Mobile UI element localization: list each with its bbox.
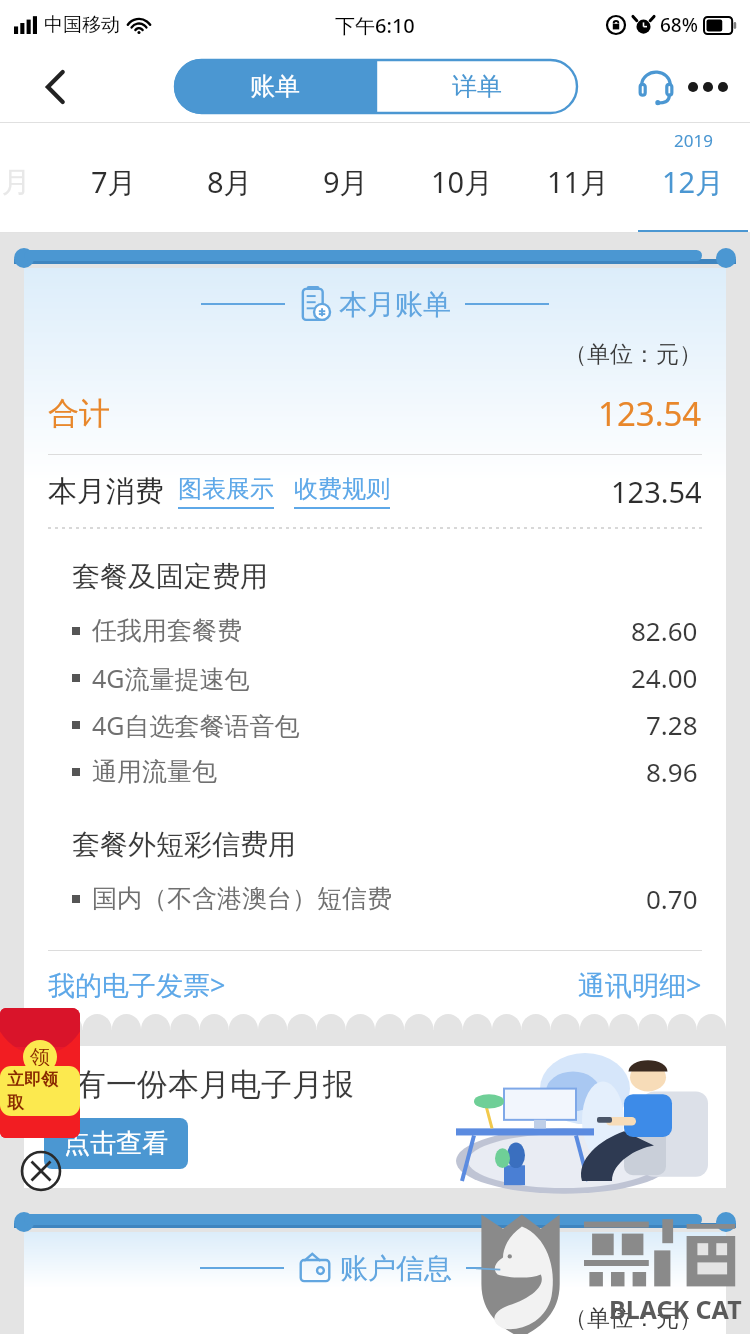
button[interactable]: 点击查看 <box>44 1118 188 1169</box>
staticText: 任我用套餐费 <box>92 615 242 646</box>
staticText: 账单 <box>250 71 300 102</box>
staticText: （单位：元） <box>564 1304 702 1333</box>
staticText: 本月消费 <box>48 473 164 510</box>
button[interactable]: 本月消费 <box>48 455 702 527</box>
staticText: 9月 <box>323 162 369 202</box>
staticText: 套餐外短彩信费用 <box>72 827 296 862</box>
staticText: 您有一份本月电子月报 <box>44 1065 354 1104</box>
staticText: 中国移动 <box>44 13 120 37</box>
staticText: 4G自选套餐语音包 <box>92 708 300 742</box>
staticText: 月 <box>2 164 31 201</box>
staticText: 套餐及固定费用 <box>72 559 268 594</box>
button[interactable]: 4G自选套餐语音包 <box>72 701 698 748</box>
staticText: （单位：元） <box>564 340 702 369</box>
button[interactable]: 客服 <box>630 61 682 113</box>
staticText: 8月 <box>207 162 253 202</box>
button[interactable]: 8月 <box>172 123 288 233</box>
button[interactable]: 通讯明细> <box>578 966 702 1003</box>
staticText: 7月 <box>91 162 137 202</box>
button[interactable]: 9月 <box>288 123 404 233</box>
staticText: 8.96 <box>646 754 698 789</box>
button[interactable]: 11月 <box>520 123 636 233</box>
staticText: 123.54 <box>611 472 702 511</box>
staticText: 123.54 <box>598 391 702 436</box>
button[interactable]: 领取红包 <box>0 1008 80 1138</box>
button[interactable]: 账单 <box>174 59 376 114</box>
button[interactable]: 关闭 <box>20 1150 62 1192</box>
staticText: 12月 <box>662 162 725 202</box>
staticText: 点击查看 <box>64 1127 168 1160</box>
button[interactable]: 您有一份本月电子月报 <box>24 1046 726 1188</box>
button[interactable]: 10月 <box>404 123 520 233</box>
button[interactable]: 我的电子发票> <box>48 966 226 1003</box>
button[interactable]: 图表展示 <box>178 474 274 504</box>
staticText: 本月账单 <box>339 287 451 322</box>
staticText: 11月 <box>547 162 610 202</box>
staticText: 4G流量提速包 <box>92 661 250 695</box>
staticText: 2019 <box>674 129 713 152</box>
staticText: 82.60 <box>631 613 698 648</box>
button[interactable]: 收费规则 <box>294 474 390 504</box>
staticText: 领 <box>30 1045 50 1070</box>
button[interactable]: 国内（不含港澳台）短信费 <box>72 875 698 922</box>
staticText: 合计 <box>48 394 110 433</box>
staticText: 24.00 <box>631 660 698 695</box>
button[interactable]: 2019 <box>636 123 750 233</box>
staticText: BLACK CAT <box>609 1292 742 1326</box>
staticText: 10月 <box>431 162 494 202</box>
staticText: 7.28 <box>646 707 698 742</box>
staticText: 立即领取 <box>7 1069 73 1113</box>
staticText: 国内（不含港澳台）短信费 <box>92 883 392 914</box>
button[interactable]: 返回 <box>34 65 78 109</box>
staticText: 68% <box>660 12 698 38</box>
staticText: 下午6:10 <box>335 12 415 39</box>
button[interactable]: 4G流量提速包 <box>72 654 698 701</box>
button[interactable]: 任我用套餐费 <box>72 607 698 654</box>
staticText: 账户信息 <box>340 1251 452 1286</box>
button[interactable]: 更多 <box>682 61 734 113</box>
button[interactable]: 7月 <box>56 123 172 233</box>
button[interactable]: 详单 <box>376 59 578 114</box>
staticText: 通用流量包 <box>92 756 217 787</box>
staticText: 详单 <box>452 71 502 102</box>
staticText: 0.70 <box>646 881 698 916</box>
button[interactable]: 通用流量包 <box>72 748 698 795</box>
